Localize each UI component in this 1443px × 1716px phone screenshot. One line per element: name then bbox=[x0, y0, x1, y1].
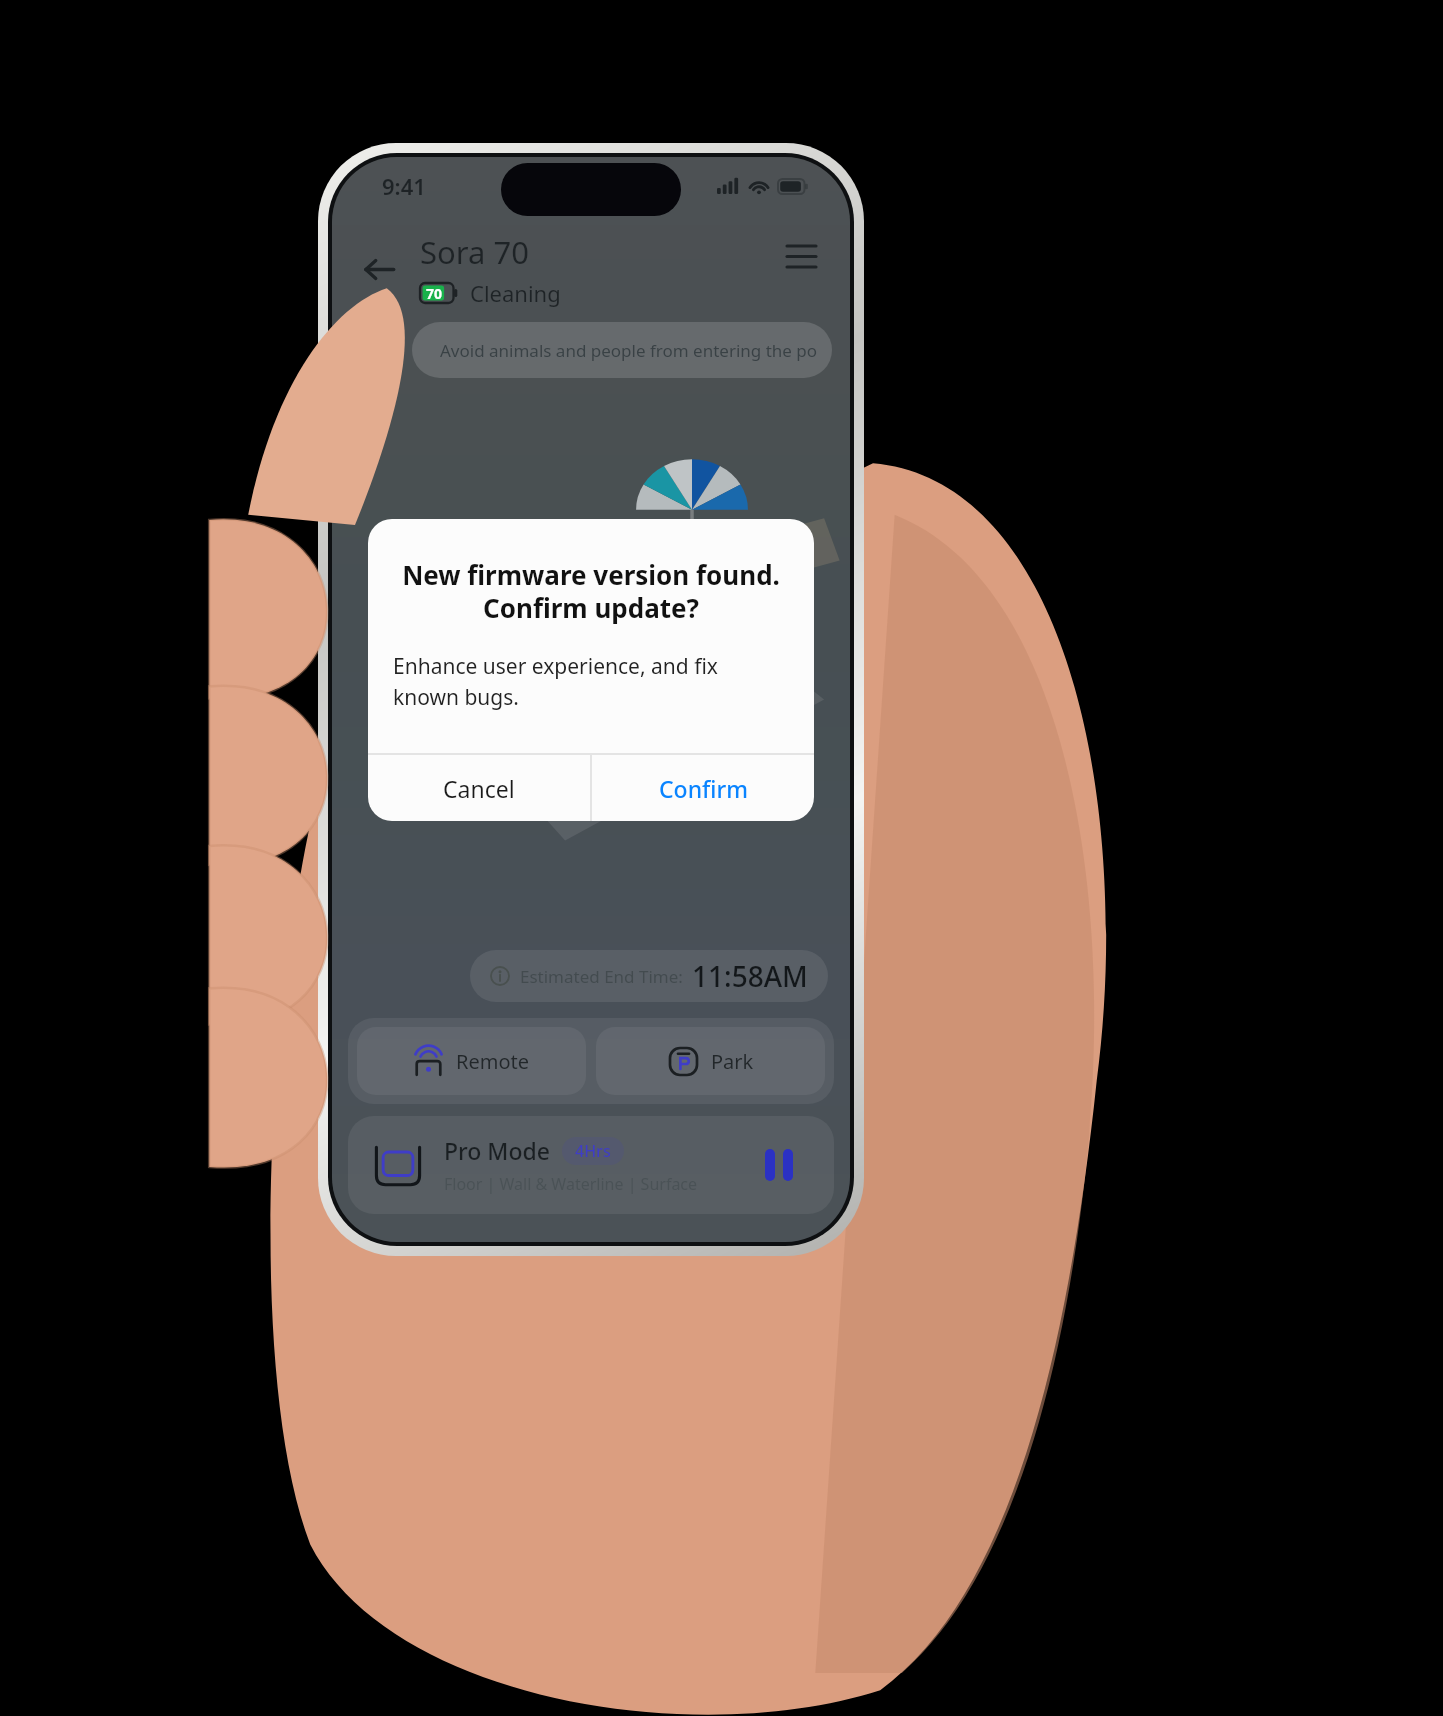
button[interactable]: Back bbox=[352, 242, 406, 296]
button[interactable]: Cancel bbox=[368, 755, 590, 821]
staticText: 4Hrs bbox=[575, 1140, 611, 1162]
staticText: Sora 70 bbox=[420, 231, 529, 273]
staticText: Cancel bbox=[443, 773, 515, 804]
staticText: 11:58AM bbox=[692, 957, 808, 995]
staticText: 9:41 bbox=[382, 171, 426, 201]
staticText: Cleaning bbox=[470, 278, 561, 308]
staticText: New firmware version found. Confirm upda… bbox=[388, 557, 794, 626]
button[interactable]: Pro Mode bbox=[348, 1116, 834, 1214]
button[interactable]: Estimated End Time: bbox=[490, 957, 808, 995]
button[interactable]: Remote bbox=[357, 1027, 586, 1095]
staticText: Enhance user experience, and fix known b… bbox=[393, 652, 789, 711]
staticText: Floor | Wall & Waterline | Surface bbox=[444, 1173, 698, 1195]
staticText: Remote bbox=[456, 1048, 530, 1075]
staticText: Confirm bbox=[659, 773, 748, 804]
staticText: Estimated End Time: bbox=[520, 965, 683, 988]
button[interactable]: Avoid animals and people from entering t… bbox=[412, 322, 832, 378]
button[interactable]: Menu bbox=[776, 231, 826, 281]
staticText: 70 bbox=[426, 284, 443, 303]
staticText: Avoid animals and people from entering t… bbox=[440, 339, 818, 362]
staticText: Park bbox=[711, 1048, 754, 1075]
button[interactable]: Pause bbox=[756, 1142, 802, 1188]
staticText: Pro Mode bbox=[444, 1135, 550, 1166]
button[interactable]: Park bbox=[596, 1027, 825, 1095]
button[interactable]: Confirm bbox=[592, 755, 814, 821]
